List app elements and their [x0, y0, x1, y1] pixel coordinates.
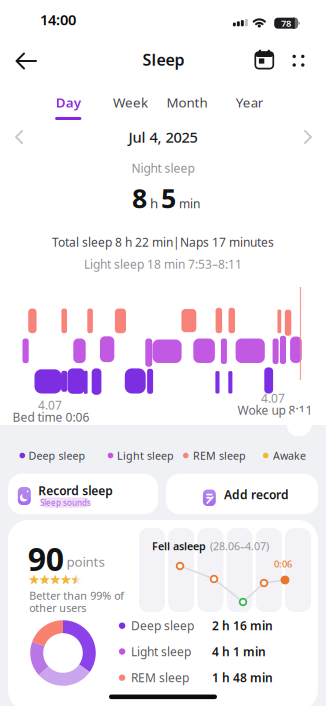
button[interactable]: Week: [104, 87, 158, 117]
button[interactable]: Calendar: [249, 46, 279, 76]
staticText: 8: [132, 180, 147, 216]
staticText: Light sleep: [117, 448, 174, 463]
staticText: Jul 4, 2025: [128, 127, 197, 147]
staticText: Woke up 8:11: [237, 402, 312, 418]
staticText: Record sleep: [38, 483, 113, 499]
staticText: Add record: [224, 487, 289, 502]
staticText: 5: [161, 180, 176, 216]
staticText: Fell asleep: [152, 539, 206, 553]
button[interactable]: Month: [158, 87, 216, 117]
staticText: Week: [113, 93, 148, 111]
button[interactable]: Year: [225, 87, 275, 117]
staticText: points: [66, 553, 104, 570]
staticText: h: [150, 194, 158, 212]
staticText: Deep sleep: [131, 618, 194, 634]
staticText: min: [179, 196, 200, 212]
staticText: REM sleep: [131, 670, 189, 686]
staticText: 14:00: [40, 10, 76, 29]
staticText: 4.07: [38, 397, 62, 413]
button[interactable]: Record sleep: [8, 474, 158, 514]
staticText: Sleep: [142, 49, 184, 70]
button[interactable]: Add record: [166, 474, 318, 514]
staticText: Day: [56, 93, 81, 111]
staticText: Total sleep 8 h 22 min|Naps 17 minutes: [52, 234, 274, 250]
staticText: Sleep sounds: [40, 497, 91, 508]
staticText: 1 h 48 min: [212, 670, 273, 686]
staticText: Night sleep: [131, 160, 194, 176]
button[interactable]: Assistant: [286, 411, 312, 437]
button[interactable]: Back: [10, 46, 40, 76]
staticText: Bed time 0:06: [12, 409, 89, 425]
staticText: Year: [236, 93, 264, 111]
staticText: REM sleep: [193, 448, 246, 463]
button[interactable]: More: [283, 46, 313, 76]
staticText: Awake: [273, 448, 306, 463]
staticText: 78: [281, 17, 291, 29]
staticText: Better than 99% of: [29, 589, 124, 603]
button[interactable]: Previous day: [4, 123, 34, 151]
button[interactable]: Day: [43, 90, 93, 124]
button[interactable]: Next day: [293, 123, 323, 151]
staticText: 2 h 16 min: [212, 618, 273, 634]
staticText: (28.06–4.07): [210, 539, 269, 553]
staticText: other users: [29, 601, 86, 615]
staticText: Light sleep: [131, 643, 191, 659]
staticText: Month: [166, 93, 207, 111]
staticText: 4 h 1 min: [212, 643, 266, 659]
staticText: 4.07: [261, 390, 285, 406]
staticText: Deep sleep: [29, 448, 86, 463]
staticText: Light sleep 18 min 7:53–8:11: [84, 256, 242, 272]
staticText: 0:06: [274, 558, 292, 570]
staticText: 90: [28, 537, 64, 580]
